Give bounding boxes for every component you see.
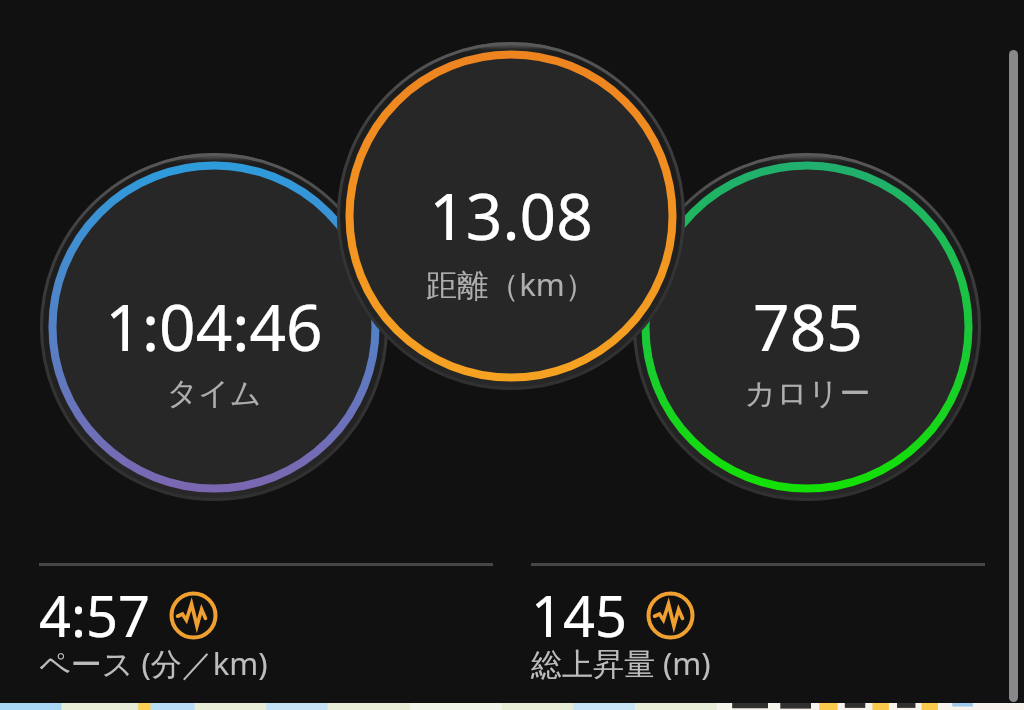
staticText: 距離（km） [426,263,596,305]
staticText: 145 [531,577,628,653]
staticText: 1:04:46 [105,283,323,370]
other: Heart rate graph [169,591,218,640]
button[interactable]: 4:57 [39,563,493,695]
staticText: 総上昇量 (m) [531,642,711,684]
staticText: 4:57 [39,577,151,653]
button[interactable]: 13.08 [341,45,681,385]
button[interactable]: 785 [637,156,977,496]
other: Heart rate graph [646,591,695,640]
staticText: 785 [753,283,863,370]
staticText: ペース (分／km) [39,642,268,684]
staticText: 13.08 [429,172,593,259]
button[interactable]: 1:04:46 [44,156,384,496]
button[interactable]: 145 [531,563,985,695]
staticText: カロリー [744,374,871,413]
staticText: タイム [166,374,262,413]
